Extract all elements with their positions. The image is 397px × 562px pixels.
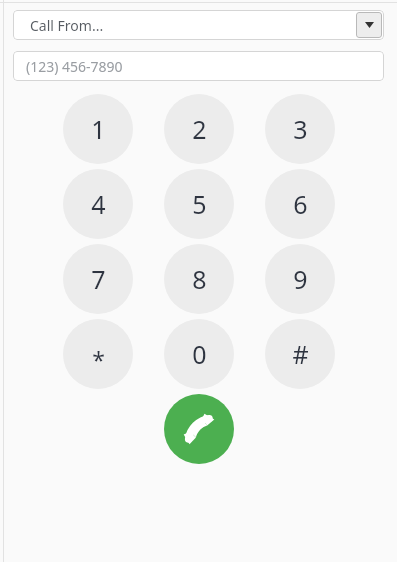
staticText: 6 [293, 187, 308, 221]
button[interactable]: 0 [164, 319, 234, 389]
button[interactable]: 1 [63, 94, 133, 164]
button[interactable]: * [63, 319, 133, 389]
button[interactable]: 3 [265, 94, 335, 164]
button[interactable]: 8 [164, 244, 234, 314]
button[interactable]: 9 [265, 244, 335, 314]
staticText: 3 [293, 112, 308, 146]
staticText: 9 [293, 262, 308, 296]
staticText: # [292, 337, 309, 371]
staticText: 4 [91, 187, 106, 221]
button[interactable]: 5 [164, 169, 234, 239]
button[interactable]: Open list [356, 12, 382, 38]
staticText: 8 [192, 262, 207, 296]
button[interactable]: (123) 456-7890 [13, 51, 384, 81]
button[interactable]: Call From... [13, 10, 384, 40]
button[interactable]: 6 [265, 169, 335, 239]
button[interactable]: Call [164, 394, 234, 464]
staticText: 5 [192, 187, 207, 221]
staticText: 1 [91, 112, 106, 146]
staticText: * [92, 344, 105, 375]
button[interactable]: # [265, 319, 335, 389]
staticText: 2 [192, 112, 207, 146]
staticText: Call From... [30, 16, 104, 35]
button[interactable]: 7 [63, 244, 133, 314]
button[interactable]: 2 [164, 94, 234, 164]
staticText: 7 [91, 262, 106, 296]
button[interactable]: 4 [63, 169, 133, 239]
staticText: 0 [192, 337, 207, 371]
staticText: (123) 456-7890 [26, 57, 123, 76]
